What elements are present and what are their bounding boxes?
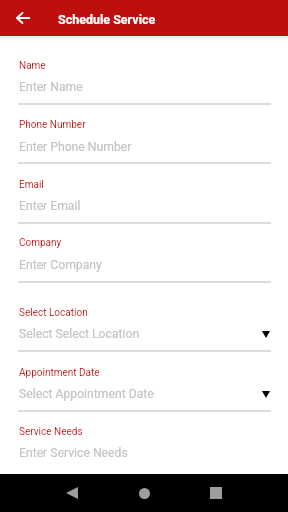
button[interactable] xyxy=(18,304,271,354)
staticText: Select Select Location xyxy=(19,327,140,341)
staticText: Schedule Service xyxy=(58,12,156,27)
staticText: Enter Name xyxy=(19,80,83,94)
staticText: Name xyxy=(19,60,46,72)
other: Open Select Location picker xyxy=(262,331,270,338)
staticText: Select Location xyxy=(19,307,88,319)
staticText: Select Appointment Date xyxy=(19,387,154,401)
staticText: Enter Email xyxy=(19,199,81,213)
staticText: Enter Phone Number xyxy=(19,140,132,154)
button[interactable] xyxy=(18,57,271,107)
other: Open Appointment Date picker xyxy=(262,391,270,398)
staticText: Enter Company xyxy=(19,258,102,272)
button[interactable]: Home xyxy=(120,474,168,512)
staticText: Phone Number xyxy=(19,119,86,131)
staticText: Email xyxy=(19,179,44,191)
staticText: Service Needs xyxy=(19,426,83,438)
button[interactable] xyxy=(18,116,271,166)
button[interactable] xyxy=(18,423,271,473)
staticText: Company xyxy=(19,237,62,249)
staticText: Appointment Date xyxy=(19,367,100,379)
button[interactable] xyxy=(18,176,271,226)
button[interactable] xyxy=(18,234,271,284)
staticText: Enter Service Needs xyxy=(19,446,128,460)
button[interactable]: Back xyxy=(48,474,96,512)
button[interactable]: Recent apps xyxy=(192,474,240,512)
button[interactable]: Navigate back xyxy=(9,5,36,32)
button[interactable] xyxy=(18,363,271,413)
